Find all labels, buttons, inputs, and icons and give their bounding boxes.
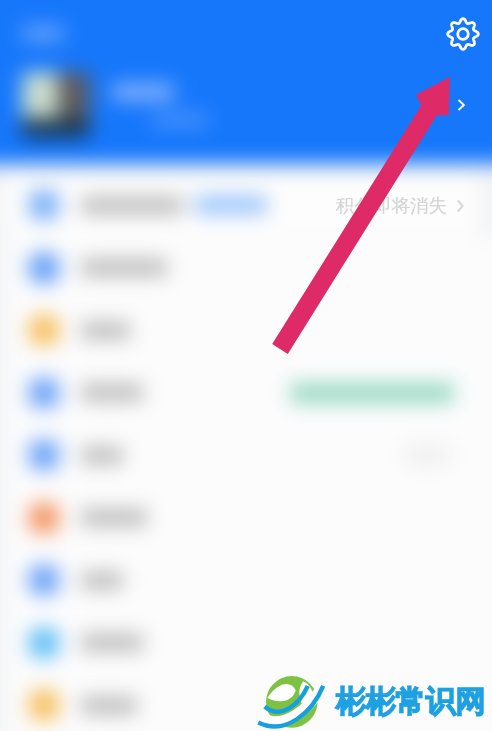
button[interactable] (0, 362, 492, 425)
button[interactable]: Settings (445, 16, 481, 52)
button[interactable] (0, 299, 492, 362)
button[interactable] (0, 674, 492, 731)
button[interactable]: 积分即将消失 (320, 180, 468, 230)
button[interactable] (0, 174, 492, 237)
button[interactable] (0, 612, 492, 675)
staticText: 彬彬常识网 (335, 683, 485, 721)
button[interactable]: Open profile (444, 88, 478, 122)
button[interactable] (0, 237, 492, 300)
button[interactable] (0, 487, 492, 550)
staticText: 积分即将消失 (336, 194, 447, 217)
button[interactable] (0, 549, 492, 612)
button[interactable] (0, 424, 492, 487)
